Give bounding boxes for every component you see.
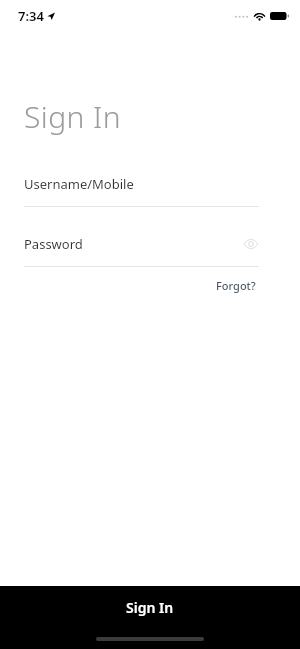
staticText: Forgot? — [216, 278, 256, 293]
button[interactable]: Password — [24, 235, 259, 267]
staticText: Sign In — [24, 96, 121, 137]
button[interactable]: Show password — [243, 236, 259, 252]
staticText: Username/Mobile — [24, 175, 134, 193]
staticText: Sign In — [126, 598, 174, 617]
button[interactable]: Sign In — [0, 586, 300, 628]
button[interactable]: Forgot? — [213, 275, 259, 296]
staticText: Password — [24, 235, 83, 253]
button[interactable]: Username/Mobile — [24, 175, 259, 207]
staticText: 7:34 — [18, 7, 44, 25]
